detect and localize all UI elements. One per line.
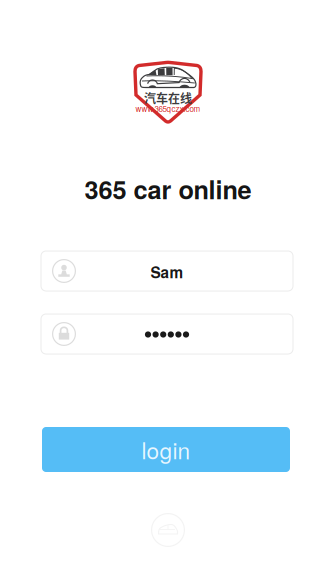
staticText: www.365qczx.com	[135, 103, 200, 114]
staticText: login	[141, 433, 190, 466]
staticText: 365 car online	[84, 171, 251, 207]
button[interactable]: Sam	[41, 251, 293, 291]
staticText: Sam	[150, 261, 183, 283]
button[interactable]	[41, 314, 293, 354]
button[interactable]: login	[42, 427, 290, 472]
staticText: 汽车在线	[144, 89, 192, 107]
